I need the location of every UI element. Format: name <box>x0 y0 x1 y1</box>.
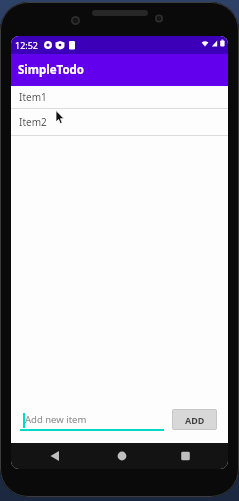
button[interactable] <box>156 443 228 469</box>
button[interactable]: Item1 <box>11 86 228 108</box>
button[interactable] <box>11 443 84 469</box>
button[interactable] <box>84 443 156 469</box>
staticText: ADD <box>185 414 205 426</box>
staticText: SimpleTodo <box>18 62 85 78</box>
button[interactable]: Item2 <box>11 109 228 135</box>
button[interactable]: ADD <box>172 409 217 430</box>
button[interactable]: Add new item <box>20 410 164 431</box>
staticText: 12:52 <box>15 39 39 51</box>
staticText: Item1 <box>19 90 47 104</box>
staticText: Add new item <box>25 413 87 426</box>
staticText: Item2 <box>19 115 47 129</box>
